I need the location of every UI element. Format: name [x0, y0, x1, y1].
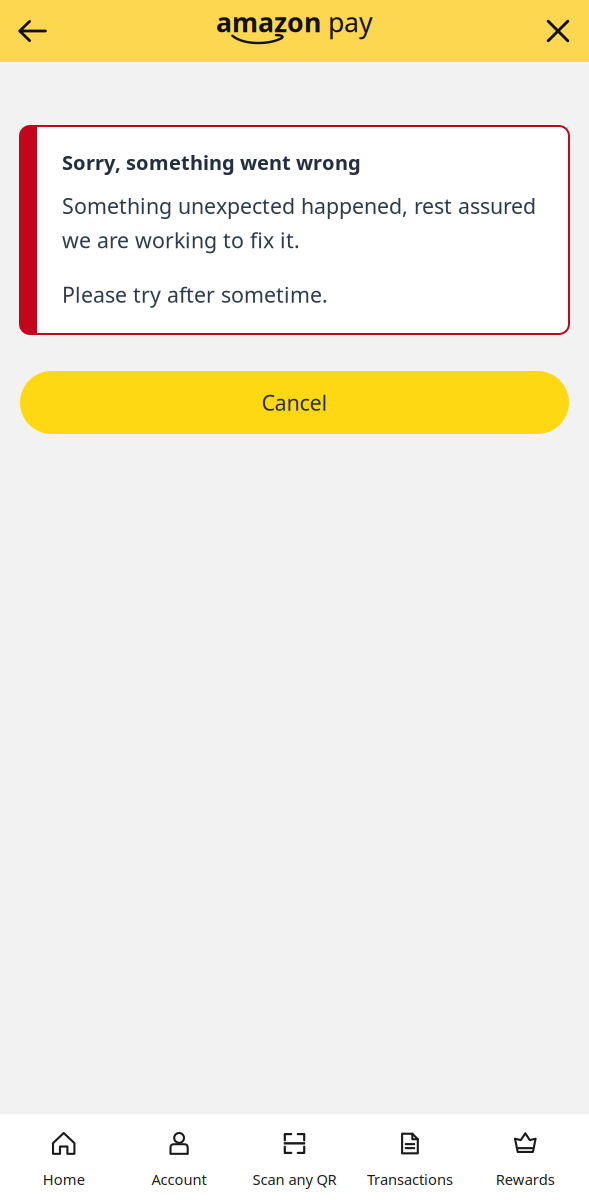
button[interactable]: Home — [6, 1127, 121, 1193]
staticText: Home — [43, 1169, 85, 1189]
button[interactable]: Scan any QR — [237, 1127, 352, 1193]
button[interactable]: Back — [12, 10, 61, 52]
staticText: Cancel — [261, 388, 327, 417]
staticText: pay — [328, 4, 373, 40]
staticText: Scan any QR — [252, 1169, 336, 1189]
staticText: Please try after sometime. — [62, 280, 328, 308]
button[interactable]: Rewards — [468, 1127, 583, 1193]
staticText: Something unexpected happened, rest assu… — [62, 192, 536, 220]
button[interactable]: Transactions — [352, 1127, 468, 1193]
button[interactable]: Account — [121, 1127, 237, 1193]
button[interactable]: Cancel — [20, 371, 569, 434]
staticText: Transactions — [367, 1169, 453, 1189]
staticText: Sorry, something went wrong — [62, 149, 361, 176]
staticText: amazon — [216, 4, 321, 40]
button[interactable]: Close — [530, 9, 577, 53]
staticText: Account — [152, 1169, 207, 1189]
staticText: we are working to fix it. — [62, 226, 300, 254]
staticText: Rewards — [496, 1169, 555, 1189]
